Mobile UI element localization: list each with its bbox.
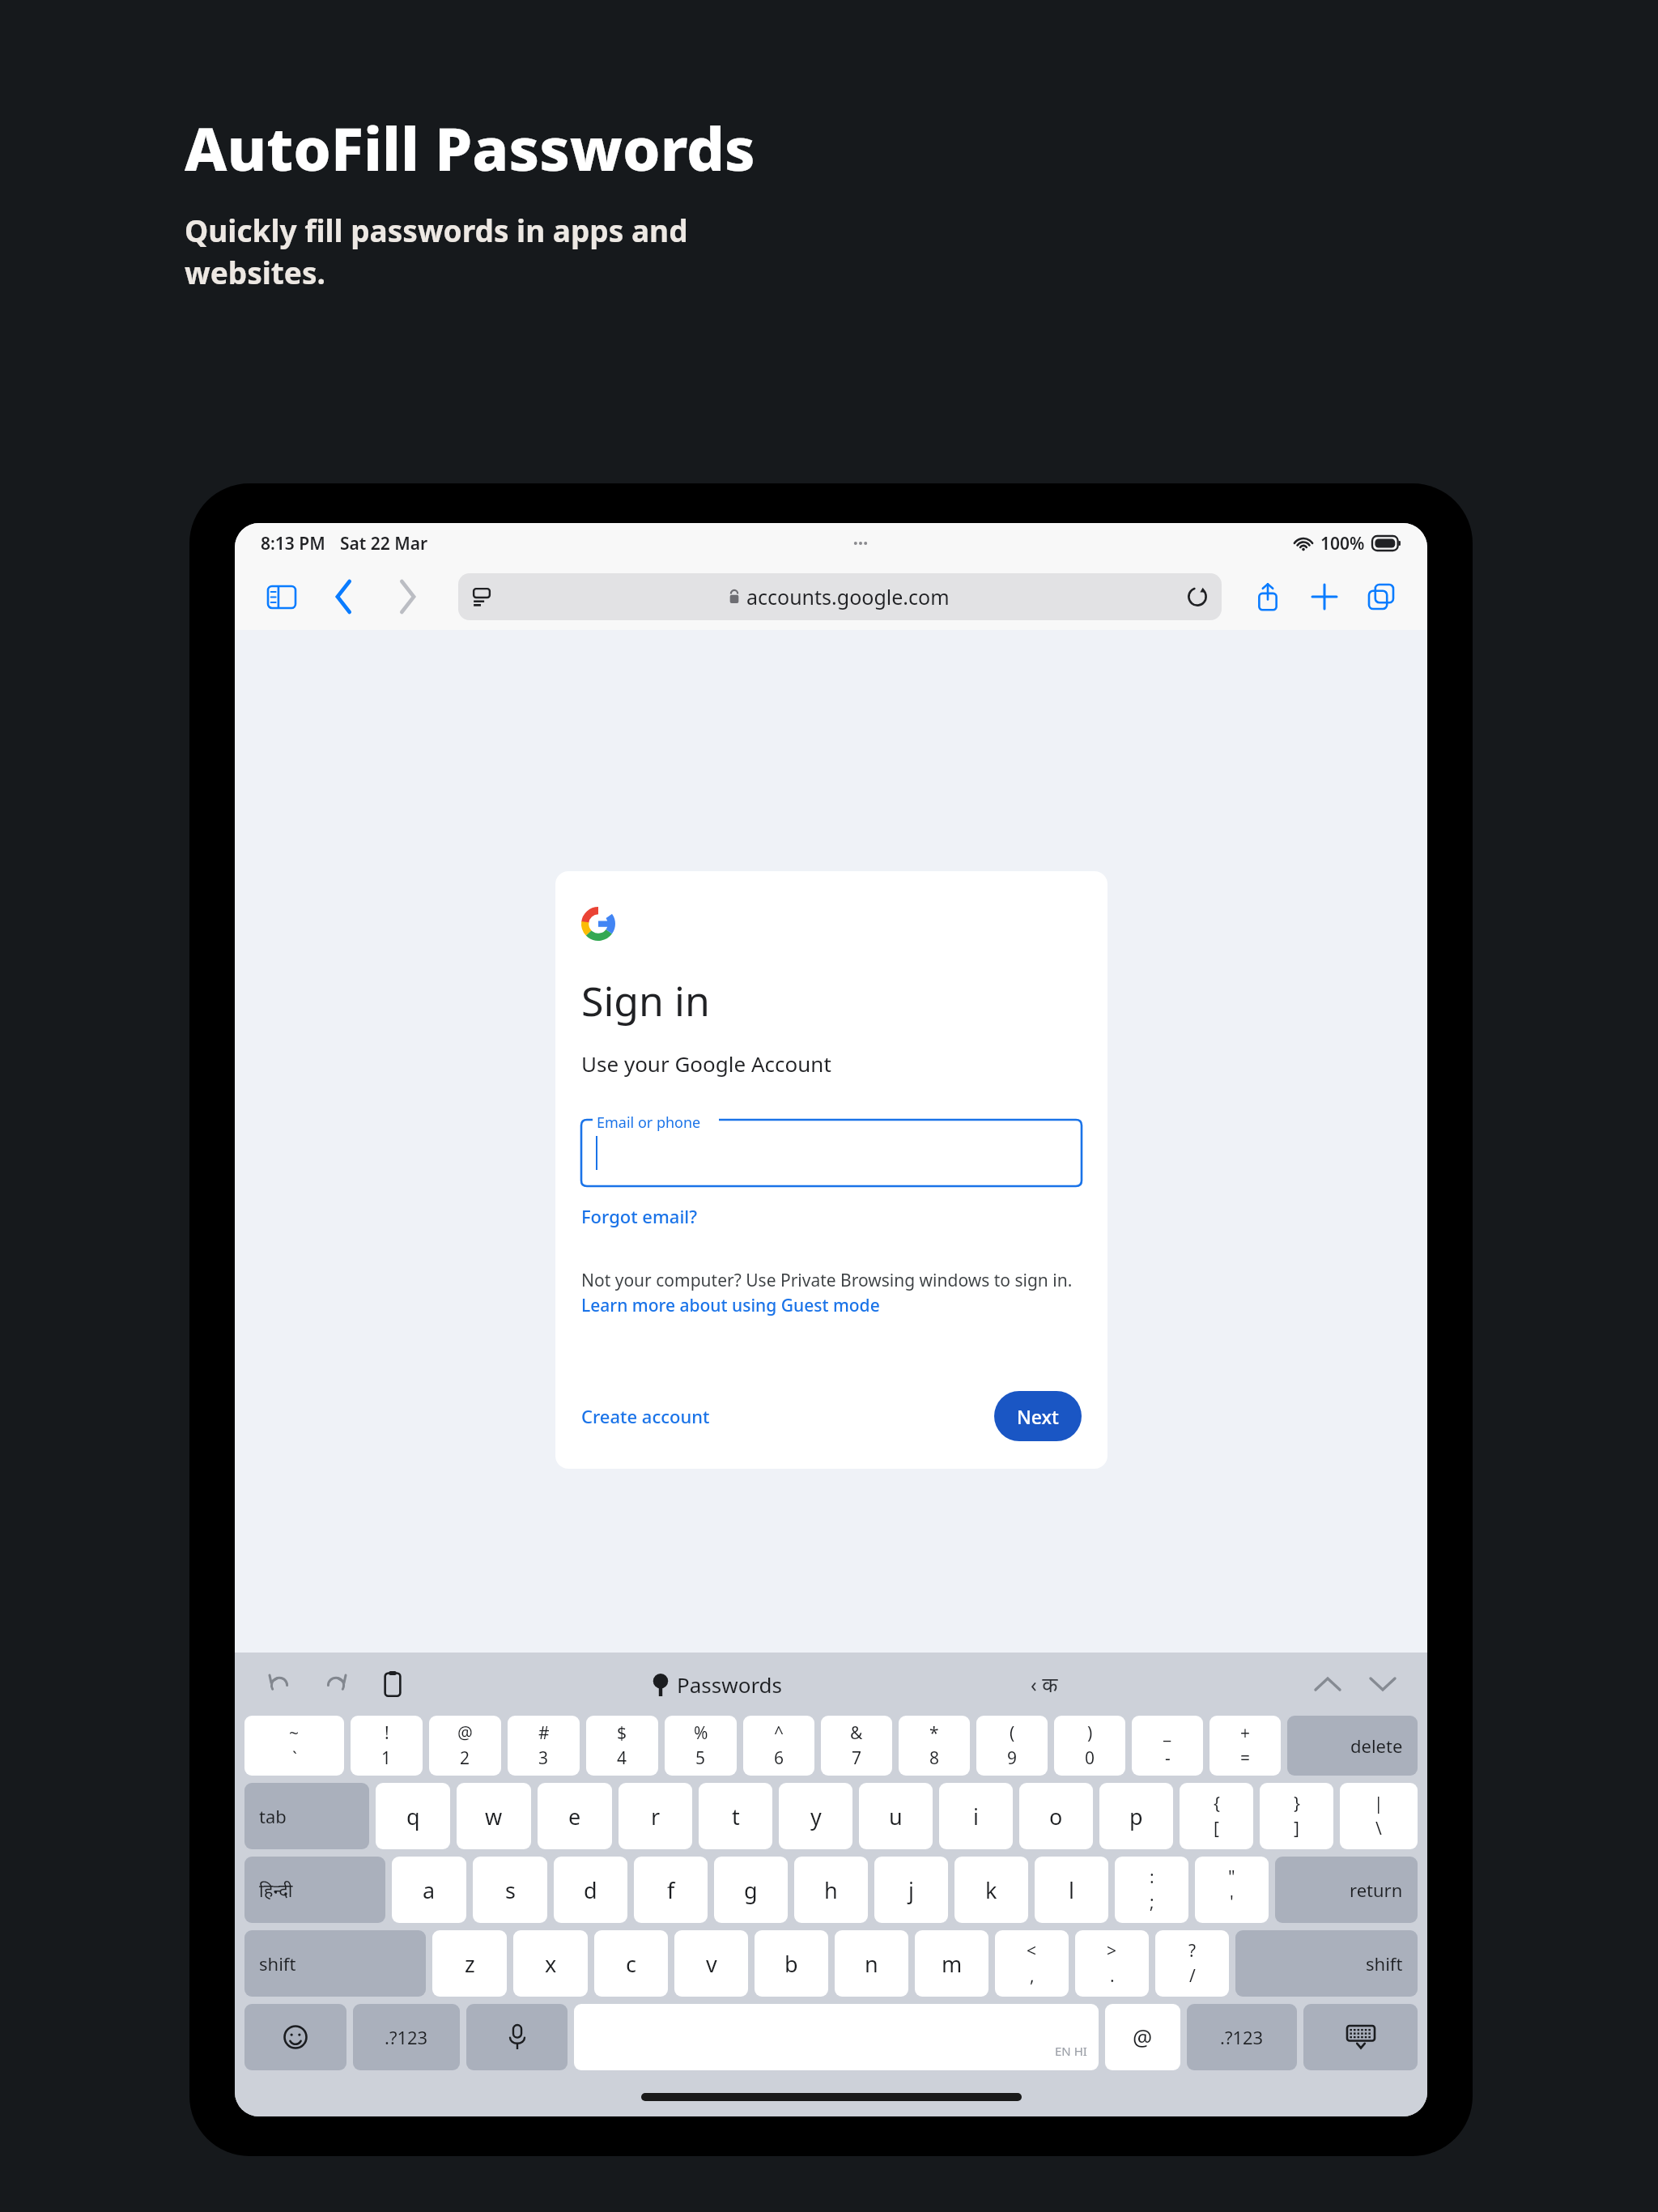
staticText: Not your computer? Use Private Browsing … [581, 1269, 1082, 1317]
button[interactable]: हिन्दी [244, 1857, 385, 1923]
staticText: : [1150, 1865, 1154, 1889]
button[interactable]: shift [1235, 1930, 1418, 1997]
button[interactable]: ^ [743, 1716, 814, 1776]
button[interactable]: j [874, 1857, 948, 1923]
button[interactable]: Next field [1361, 1662, 1405, 1706]
button[interactable]: ( [976, 1716, 1048, 1776]
button[interactable]: .?123 [1187, 2004, 1297, 2070]
button[interactable]: s [473, 1857, 547, 1923]
button[interactable]: o [1019, 1783, 1093, 1849]
button[interactable]: delete [1287, 1716, 1418, 1776]
button[interactable]: r [619, 1783, 692, 1849]
button[interactable]: q [376, 1783, 450, 1849]
button[interactable]: > [1075, 1930, 1149, 1997]
button[interactable]: Share [1246, 575, 1290, 619]
button[interactable]: Previous field [1306, 1662, 1350, 1706]
staticText: 3 [538, 1746, 549, 1770]
button[interactable]: m [915, 1930, 988, 1997]
button[interactable]: Forward [385, 575, 429, 619]
button[interactable]: a [392, 1857, 466, 1923]
button[interactable]: x [513, 1930, 588, 1997]
button[interactable]: & [821, 1716, 892, 1776]
button[interactable]: .?123 [353, 2004, 460, 2070]
button[interactable]: emoji [244, 2004, 346, 2070]
staticText: ^ [774, 1721, 784, 1745]
button[interactable]: ‹ क [1020, 1665, 1069, 1704]
button[interactable]: < [995, 1930, 1069, 1997]
button[interactable]: _ [1132, 1716, 1203, 1776]
button[interactable]: : [1115, 1857, 1188, 1923]
button[interactable]: % [665, 1716, 737, 1776]
button[interactable]: | [1340, 1783, 1418, 1849]
staticText: s [505, 1875, 516, 1905]
button[interactable]: Tabs [1359, 575, 1403, 619]
button[interactable]: @ [1105, 2004, 1180, 2070]
button[interactable]: i [939, 1783, 1013, 1849]
button[interactable]: Redo [314, 1662, 358, 1706]
button[interactable]: hide [1303, 2004, 1418, 2070]
staticText: 100% [1320, 532, 1365, 555]
button[interactable]: } [1260, 1783, 1333, 1849]
button[interactable]: p [1099, 1783, 1173, 1849]
button[interactable]: shift [244, 1930, 426, 1997]
button[interactable]: New tab [1303, 575, 1346, 619]
staticText: , [1030, 1964, 1035, 1988]
button[interactable]: g [714, 1857, 788, 1923]
button[interactable]: Show sidebar [259, 574, 304, 619]
button[interactable]: accounts.google.com [471, 573, 1209, 620]
button[interactable]: @ [429, 1716, 501, 1776]
button[interactable]: Create account [581, 1404, 710, 1428]
button[interactable]: Paste [371, 1662, 414, 1706]
button[interactable]: Next [994, 1391, 1082, 1441]
button[interactable]: space [574, 2004, 1099, 2070]
staticText: h [824, 1875, 838, 1905]
button[interactable]: Forgot email? [581, 1204, 698, 1228]
button[interactable]: y [779, 1783, 852, 1849]
staticText: p [1129, 1802, 1143, 1831]
button[interactable]: ) [1054, 1716, 1125, 1776]
staticText: k [985, 1875, 997, 1905]
staticText: j [908, 1875, 914, 1905]
staticText: .?123 [385, 2025, 428, 2049]
button[interactable]: return [1275, 1857, 1418, 1923]
button[interactable]: w [457, 1783, 531, 1849]
staticText: ) [1087, 1721, 1093, 1745]
staticText: _ [1163, 1721, 1171, 1745]
button[interactable]: mic [466, 2004, 568, 2070]
button[interactable]: e [538, 1783, 612, 1849]
button[interactable]: b [755, 1930, 828, 1997]
button[interactable]: u [859, 1783, 933, 1849]
button[interactable]: ! [351, 1716, 423, 1776]
staticText: 8:13 PM [261, 532, 325, 555]
button[interactable]: c [594, 1930, 668, 1997]
button[interactable]: ? [1155, 1930, 1229, 1997]
button[interactable]: f [634, 1857, 708, 1923]
button[interactable]: Undo [257, 1662, 301, 1706]
button[interactable]: { [1180, 1783, 1253, 1849]
staticText: c [626, 1949, 636, 1979]
button[interactable]: ~ [244, 1716, 344, 1776]
staticText: w [485, 1802, 503, 1831]
staticText: d [584, 1875, 597, 1905]
button[interactable]: h [794, 1857, 868, 1923]
button[interactable]: * [899, 1716, 970, 1776]
button[interactable]: n [835, 1930, 908, 1997]
button[interactable]: Passwords [652, 1670, 783, 1699]
staticText: ? [1188, 1939, 1197, 1963]
staticText: Forgot email? [581, 1204, 698, 1228]
button[interactable]: t [699, 1783, 772, 1849]
staticText: \ [1375, 1817, 1382, 1840]
staticText: + [1240, 1721, 1251, 1745]
button[interactable]: v [674, 1930, 748, 1997]
button[interactable]: Back [322, 575, 366, 619]
button[interactable]: d [554, 1857, 627, 1923]
button[interactable]: " [1195, 1857, 1269, 1923]
button[interactable]: z [432, 1930, 507, 1997]
staticText: EN HI [1055, 2043, 1087, 2059]
button[interactable]: k [954, 1857, 1028, 1923]
button[interactable]: l [1035, 1857, 1108, 1923]
button[interactable]: + [1209, 1716, 1281, 1776]
button[interactable]: $ [586, 1716, 658, 1776]
button[interactable]: tab [244, 1783, 369, 1849]
button[interactable]: # [508, 1716, 580, 1776]
